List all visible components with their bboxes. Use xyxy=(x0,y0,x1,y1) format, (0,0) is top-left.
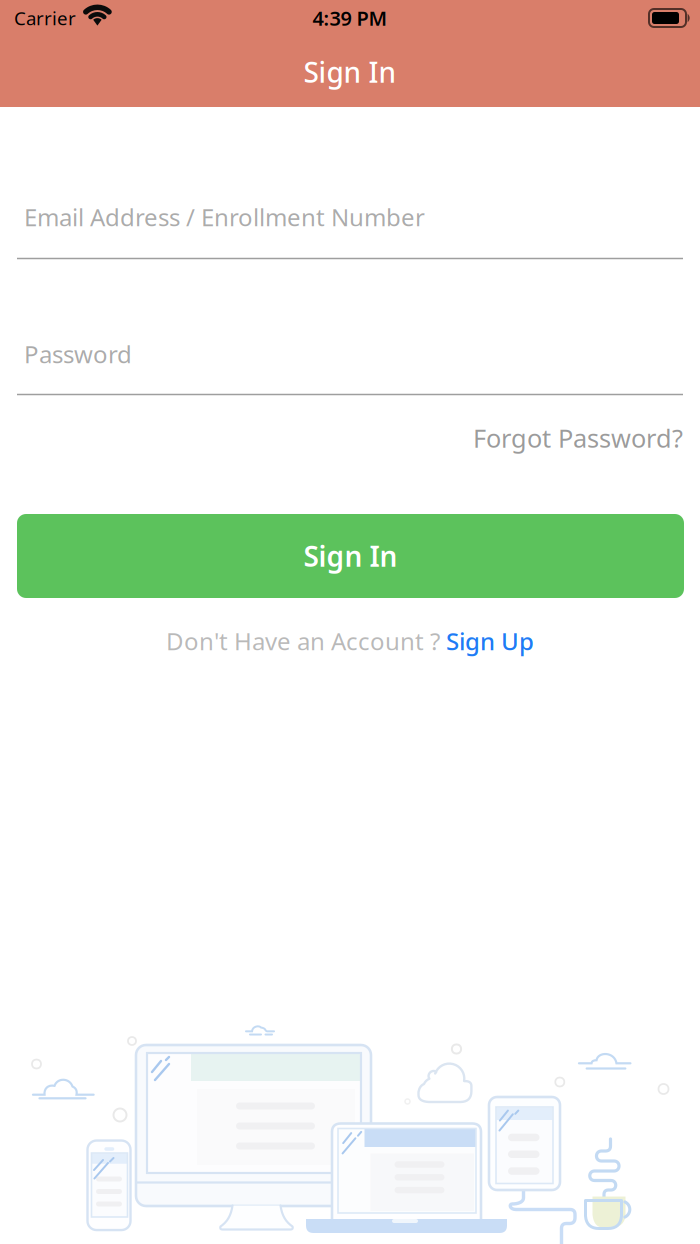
staticText: Sign In xyxy=(303,53,396,91)
staticText: Sign Up xyxy=(446,625,534,657)
staticText: Sign In xyxy=(303,537,397,575)
staticText: 4:39 PM xyxy=(312,5,387,31)
button[interactable]: Sign In xyxy=(17,514,684,598)
staticText: Password xyxy=(24,338,132,370)
staticText: Email Address / Enrollment Number xyxy=(24,201,425,233)
staticText: Carrier xyxy=(14,6,76,30)
button[interactable]: Sign Up xyxy=(446,625,534,657)
staticText: Don't Have an Account ? xyxy=(166,625,440,657)
staticText: Forgot Password? xyxy=(473,421,683,455)
button[interactable]: Forgot Password? xyxy=(473,421,683,455)
